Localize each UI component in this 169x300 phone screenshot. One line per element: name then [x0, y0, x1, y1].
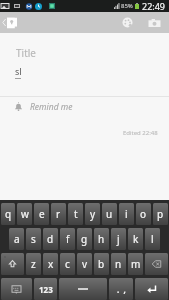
staticText: c — [65, 257, 70, 271]
button[interactable]: b — [94, 253, 109, 275]
button[interactable]: Punctuation — [109, 278, 133, 300]
staticText: p — [157, 207, 164, 221]
staticText: sl — [15, 65, 22, 77]
button[interactable]: e — [34, 203, 49, 225]
button[interactable]: o — [136, 203, 151, 225]
staticText: z — [31, 257, 36, 271]
staticText: n — [115, 257, 122, 271]
button[interactable]: d — [43, 228, 58, 250]
button[interactable]: z — [26, 253, 41, 275]
button[interactable]: Space — [59, 278, 107, 300]
button[interactable]: h — [94, 228, 109, 250]
button[interactable]: p — [153, 203, 168, 225]
button[interactable]: n — [111, 253, 126, 275]
staticText: 85% — [121, 2, 133, 10]
staticText: m — [131, 257, 141, 271]
button[interactable]: l — [145, 228, 160, 250]
staticText: s — [31, 232, 36, 246]
button[interactable]: k — [128, 228, 143, 250]
staticText: w — [21, 207, 29, 221]
staticText: d — [47, 232, 54, 246]
button[interactable]: Navigate up — [0, 12, 22, 33]
staticText: b — [98, 257, 105, 271]
button[interactable]: w — [17, 203, 32, 225]
staticText: e — [39, 207, 45, 221]
staticText: v — [82, 257, 88, 271]
button[interactable]: Numbers — [34, 278, 57, 300]
button[interactable]: m — [128, 253, 143, 275]
button[interactable]: q — [1, 203, 15, 225]
button[interactable]: g — [77, 228, 92, 250]
staticText: j — [117, 232, 120, 246]
button[interactable]: a — [9, 228, 24, 250]
button[interactable]: Shift — [1, 253, 24, 275]
staticText: g — [81, 232, 88, 246]
button[interactable]: u — [102, 203, 117, 225]
staticText: a — [14, 232, 20, 246]
button[interactable]: v — [77, 253, 92, 275]
staticText: k — [133, 232, 139, 246]
button[interactable]: t — [68, 203, 83, 225]
button[interactable]: r — [51, 203, 66, 225]
button[interactable]: Emoji — [1, 278, 32, 300]
staticText: q — [5, 207, 12, 221]
staticText: o — [140, 207, 147, 221]
staticText: y — [90, 207, 96, 221]
button[interactable]: Remind me — [0, 97, 169, 116]
button[interactable]: Change color — [114, 12, 140, 33]
button[interactable]: s — [26, 228, 41, 250]
staticText: 22:49 — [142, 0, 166, 12]
button[interactable]: x — [43, 253, 58, 275]
staticText: i — [125, 207, 128, 221]
staticText: Remind me — [30, 101, 73, 113]
button[interactable]: c — [60, 253, 75, 275]
staticText: f — [66, 232, 70, 246]
staticText: r — [56, 207, 61, 221]
staticText: . , — [117, 284, 126, 295]
button[interactable]: y — [85, 203, 100, 225]
staticText: u — [106, 207, 113, 221]
staticText: l — [151, 232, 154, 246]
staticText: t — [74, 207, 78, 221]
staticText: Title — [16, 46, 36, 60]
button[interactable]: Enter — [135, 278, 168, 300]
staticText: Edited 22:48 — [123, 129, 158, 137]
staticText: 123 — [39, 284, 53, 295]
button[interactable]: Add image — [140, 12, 168, 33]
button[interactable]: j — [111, 228, 126, 250]
staticText: h — [98, 232, 105, 246]
button[interactable]: Backspace — [145, 253, 168, 275]
button[interactable]: f — [60, 228, 75, 250]
button[interactable]: i — [119, 203, 134, 225]
staticText: x — [48, 257, 54, 271]
